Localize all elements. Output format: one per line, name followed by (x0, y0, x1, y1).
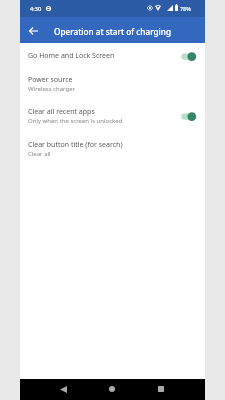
staticText: Clear all (28, 150, 51, 158)
button[interactable]: Power source (20, 67, 205, 100)
staticText: Operation at start of charging (54, 26, 172, 37)
button[interactable]: Navigate up (24, 22, 42, 40)
button[interactable]: Toggle Clear all recent apps (181, 109, 201, 123)
staticText: Go Home and Lock Screen (28, 51, 115, 61)
staticText: 78% (180, 5, 191, 12)
button[interactable]: Back (54, 380, 72, 398)
button[interactable]: Home (103, 380, 121, 398)
button[interactable]: Go Home and Lock Screen (20, 44, 205, 67)
button[interactable]: Toggle Go Home and Lock Screen (181, 49, 201, 63)
staticText: Power source (28, 75, 73, 85)
button[interactable]: Clear all recent apps (20, 99, 205, 132)
staticText: Clear all recent apps (28, 107, 95, 117)
staticText: Only when the screen is unlocked (28, 117, 123, 125)
staticText: 4:30 (30, 5, 42, 13)
staticText: Clear button title (for search) (28, 140, 123, 150)
staticText: Wireless charger (28, 85, 76, 93)
button[interactable]: Clear button title (for search) (20, 132, 205, 165)
button[interactable]: Recent apps (152, 380, 170, 398)
